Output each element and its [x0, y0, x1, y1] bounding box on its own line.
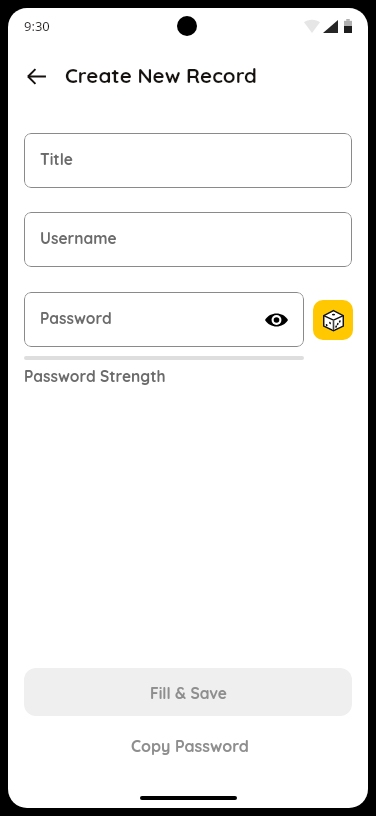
- staticText: Username: [40, 228, 117, 247]
- staticText: 9:30: [24, 17, 50, 35]
- button[interactable]: Fill & Save: [24, 668, 352, 716]
- button[interactable]: Password: [24, 292, 304, 347]
- staticText: Copy Password: [131, 736, 249, 756]
- staticText: Password Strength: [24, 366, 166, 385]
- button[interactable]: Back: [20, 60, 52, 92]
- staticText: Fill & Save: [150, 683, 227, 702]
- staticText: Password: [40, 308, 112, 327]
- button[interactable]: Generate password: [313, 300, 353, 340]
- button[interactable]: Title: [24, 133, 352, 188]
- staticText: Title: [40, 149, 73, 168]
- button[interactable]: Show password: [256, 300, 296, 340]
- button[interactable]: Copy Password: [26, 729, 354, 763]
- staticText: Create New Record: [65, 62, 257, 88]
- button[interactable]: Username: [24, 212, 352, 267]
